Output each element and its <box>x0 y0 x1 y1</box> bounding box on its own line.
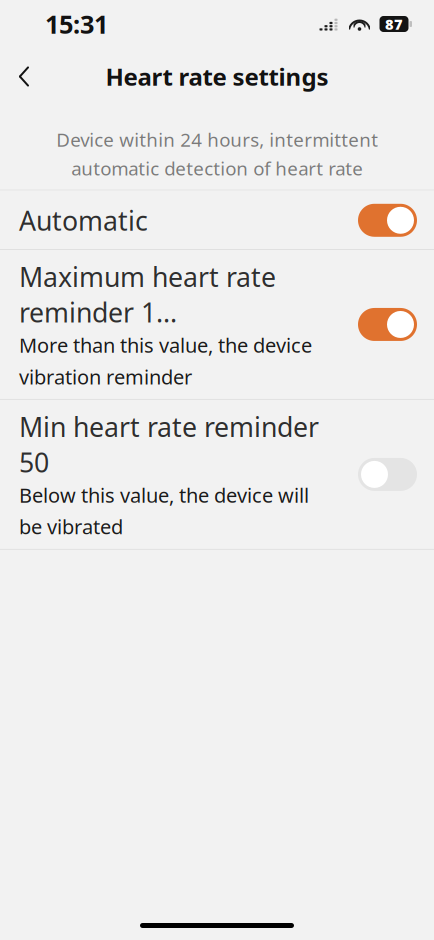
button[interactable]: Maximum heart rate reminder 1... <box>0 250 434 400</box>
staticText: 15:31 <box>45 7 108 41</box>
staticText: Min heart rate reminder 50 <box>19 409 319 480</box>
button[interactable]: Back <box>0 51 48 101</box>
button[interactable]: Automatic <box>0 191 434 250</box>
staticText: Maximum heart rate reminder 1... <box>19 259 276 330</box>
staticText: Device within 24 hours, intermittent aut… <box>56 127 378 181</box>
staticText: 87 <box>385 14 403 34</box>
staticText: Automatic <box>19 203 148 238</box>
staticText: Below this value, the device will be vib… <box>19 482 309 540</box>
staticText: More than this value, the device vibrati… <box>19 332 312 390</box>
staticText: Heart rate settings <box>105 61 328 92</box>
button[interactable]: Min heart rate reminder 50 <box>0 400 434 550</box>
